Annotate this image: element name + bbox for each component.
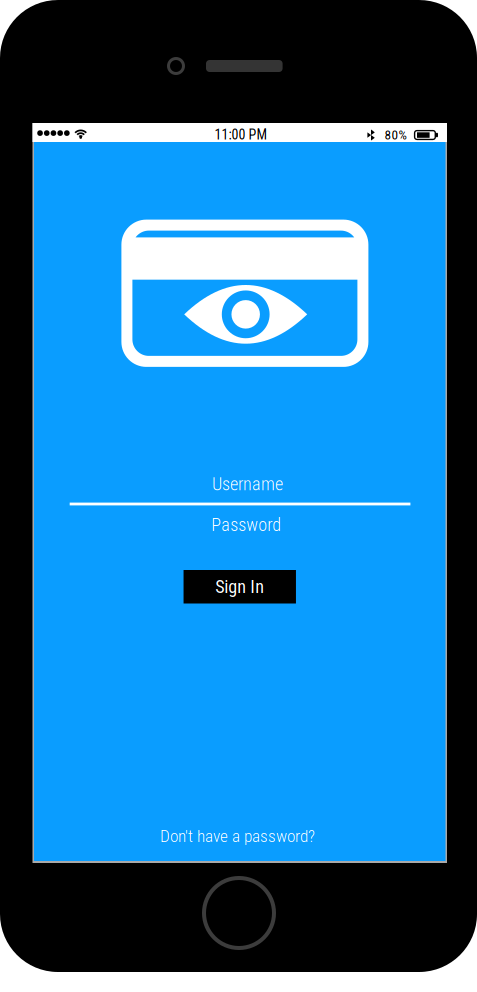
staticText: Password: [211, 514, 281, 535]
staticText: Username: [212, 473, 283, 495]
button[interactable]: Sign In: [183, 570, 296, 603]
staticText: 80%: [385, 127, 407, 143]
button[interactable]: Don't have a password?: [160, 826, 315, 846]
staticText: Sign In: [215, 576, 264, 597]
staticText: 11:00 PM: [214, 126, 267, 143]
staticText: Don't have a password?: [160, 826, 315, 846]
